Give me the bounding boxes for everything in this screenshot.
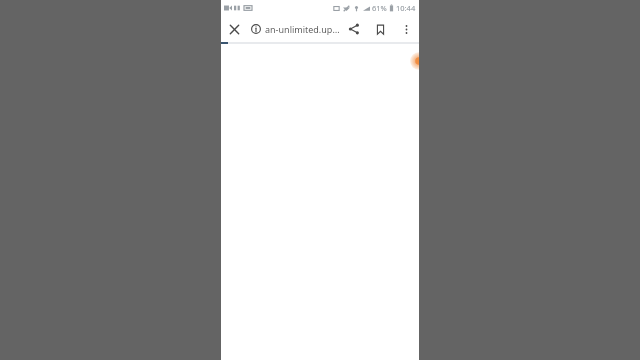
staticText: 61% — [372, 3, 387, 13]
button[interactable]: Close — [221, 16, 247, 42]
button[interactable]: Share — [341, 16, 367, 42]
staticText: 10:44 — [396, 3, 416, 13]
button[interactable]: Floating action bubble — [410, 52, 419, 70]
button[interactable]: Bookmark — [367, 16, 393, 42]
button[interactable]: an-unlimited.uptodown.com — [251, 15, 341, 42]
staticText: an-unlimited.uptodown.com — [265, 23, 341, 35]
button[interactable]: More options — [393, 16, 419, 42]
